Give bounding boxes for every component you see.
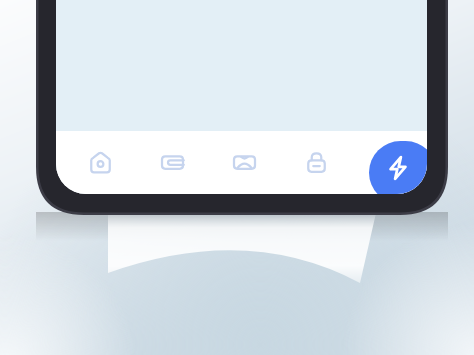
button[interactable]: Wallet [136,131,208,194]
button[interactable]: Quick action [369,141,427,194]
button[interactable]: Home [64,131,136,194]
button[interactable]: Gallery [208,131,280,194]
button[interactable]: Locker [280,131,352,194]
